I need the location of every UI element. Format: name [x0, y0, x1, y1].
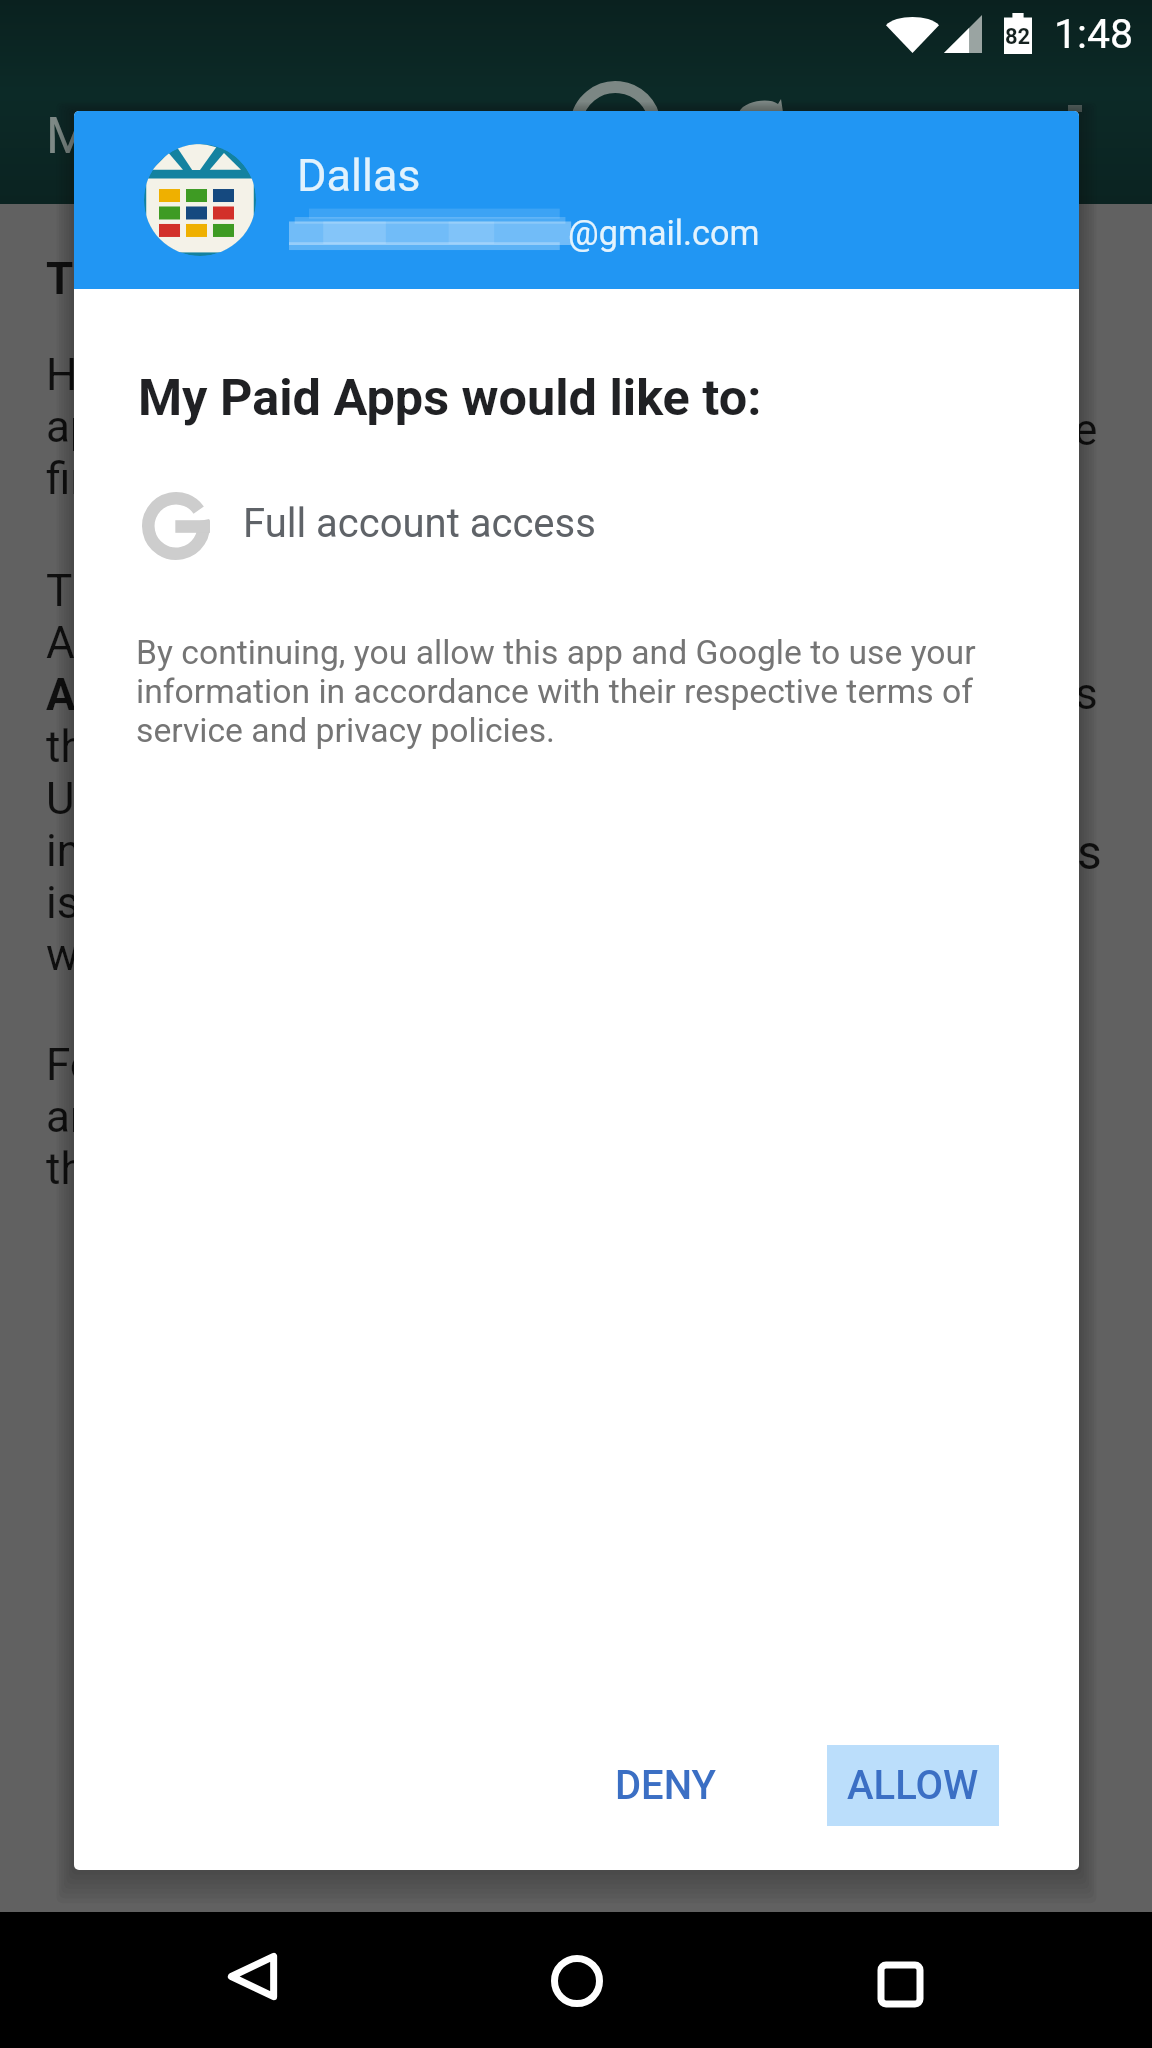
staticText: By continuing, you allow this app and Go… — [136, 633, 994, 750]
staticText: Dallas — [297, 149, 421, 202]
button[interactable]: ALLOW — [827, 1745, 999, 1826]
staticText: Full account access — [243, 500, 596, 547]
staticText: the questions that you may have. — [46, 1143, 689, 1195]
staticText: Here is some useful information about th… — [46, 349, 870, 401]
staticText: e — [1074, 404, 1098, 456]
staticText: when you change to a new device. — [46, 929, 712, 981]
staticText: Thank you for your purchase! — [46, 253, 624, 305]
staticText: DENY — [615, 1762, 716, 1809]
staticText: s — [1075, 668, 1098, 720]
staticText: Account that you pick here will be the — [46, 669, 787, 721]
staticText: s — [1077, 824, 1102, 880]
staticText: Using the application requires you to si… — [46, 773, 851, 825]
button[interactable]: Back — [202, 1926, 302, 2026]
button[interactable]: Recent apps — [850, 1934, 950, 2034]
staticText: the one used for all of your purchases. — [46, 721, 793, 773]
staticText: in with a Google account so that it is — [46, 825, 755, 877]
staticText: My Paid Apps would like to: — [138, 368, 762, 427]
staticText: @gmail.com — [568, 213, 760, 253]
staticText: For more details please contact us — [46, 1039, 721, 1091]
staticText: application and where you are able to — [46, 401, 773, 453]
staticText: is possible to restore your purchases — [46, 877, 764, 929]
staticText: 82 — [1005, 24, 1031, 50]
staticText: and we will be happy to answer all of — [46, 1091, 762, 1143]
staticText: ALLOW — [847, 1762, 979, 1809]
button[interactable]: DENY — [588, 1745, 743, 1826]
staticText: My Paid Apps — [46, 107, 352, 166]
button[interactable]: Home — [527, 1931, 627, 2031]
staticText: This app needs access to some of your — [46, 565, 811, 617]
staticText: find all of the things you bought here. — [46, 453, 769, 505]
staticText: Account data in order to operate. The — [46, 617, 772, 669]
staticText: 1:48 — [1054, 10, 1134, 58]
